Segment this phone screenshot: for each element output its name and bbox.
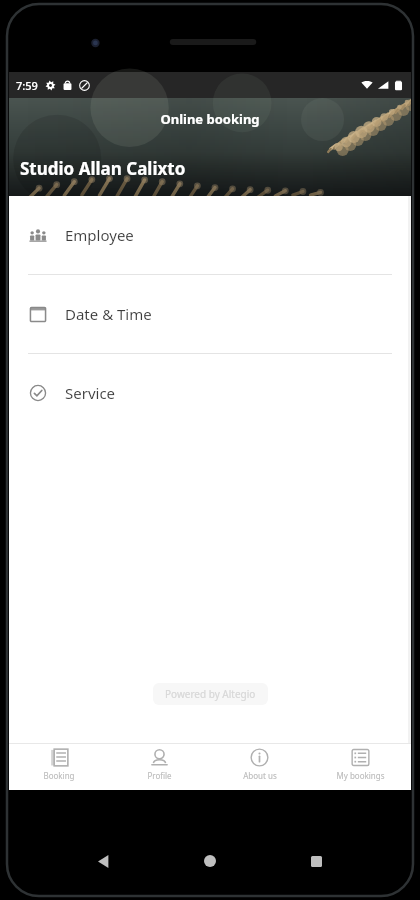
- button[interactable]: About us: [209, 744, 310, 790]
- button[interactable]: My bookings: [310, 744, 411, 790]
- staticText: Profile: [147, 770, 172, 781]
- staticText: My bookings: [336, 770, 385, 781]
- staticText: Powered by Altegio: [165, 687, 256, 701]
- button[interactable]: Employee: [9, 196, 411, 274]
- staticText: 7:59: [16, 78, 38, 93]
- button[interactable]: Back: [93, 850, 115, 872]
- button[interactable]: Profile: [109, 744, 209, 790]
- button[interactable]: Service: [9, 354, 411, 432]
- staticText: Date & Time: [65, 304, 152, 324]
- button[interactable]: Home: [199, 850, 221, 872]
- button[interactable]: Date & Time: [9, 275, 411, 353]
- staticText: Booking: [43, 770, 75, 781]
- button[interactable]: Recent apps: [305, 850, 327, 872]
- staticText: Employee: [65, 225, 134, 245]
- staticText: Studio Allan Calixto: [20, 157, 186, 180]
- button[interactable]: Booking: [9, 744, 109, 790]
- staticText: Online booking: [160, 110, 260, 128]
- staticText: Service: [65, 383, 116, 403]
- staticText: About us: [243, 770, 277, 781]
